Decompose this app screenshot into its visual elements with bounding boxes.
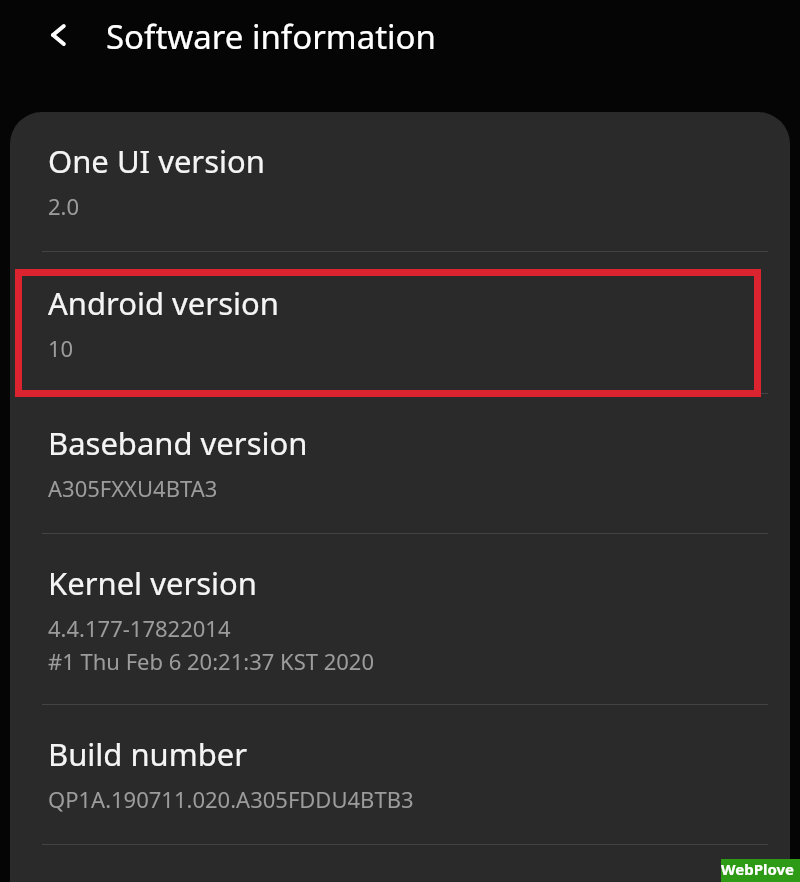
staticText: QP1A.190711.020.A305FDDU4BTB3	[48, 784, 414, 814]
staticText: #1 Thu Feb 6 20:21:37 KST 2020	[48, 646, 375, 676]
button[interactable]: Android version	[10, 252, 790, 393]
staticText: 10	[48, 333, 74, 363]
staticText: A305FXXU4BTA3	[48, 473, 218, 503]
button[interactable]: Back	[34, 10, 84, 60]
staticText: Build number	[48, 733, 248, 775]
staticText: Software information	[106, 14, 436, 59]
button[interactable]: One UI version	[10, 112, 790, 251]
button[interactable]: Baseband version	[10, 394, 790, 533]
staticText: WebPlover	[721, 859, 800, 882]
staticText: One UI version	[48, 140, 265, 182]
staticText: 2.0	[48, 191, 80, 221]
button[interactable]: Build number	[10, 705, 790, 844]
staticText: Baseband version	[48, 422, 308, 464]
staticText: Android version	[48, 282, 279, 324]
button[interactable]: Kernel version	[10, 534, 790, 704]
staticText: 4.4.177-17822014	[48, 613, 231, 643]
staticText: Kernel version	[48, 562, 257, 604]
